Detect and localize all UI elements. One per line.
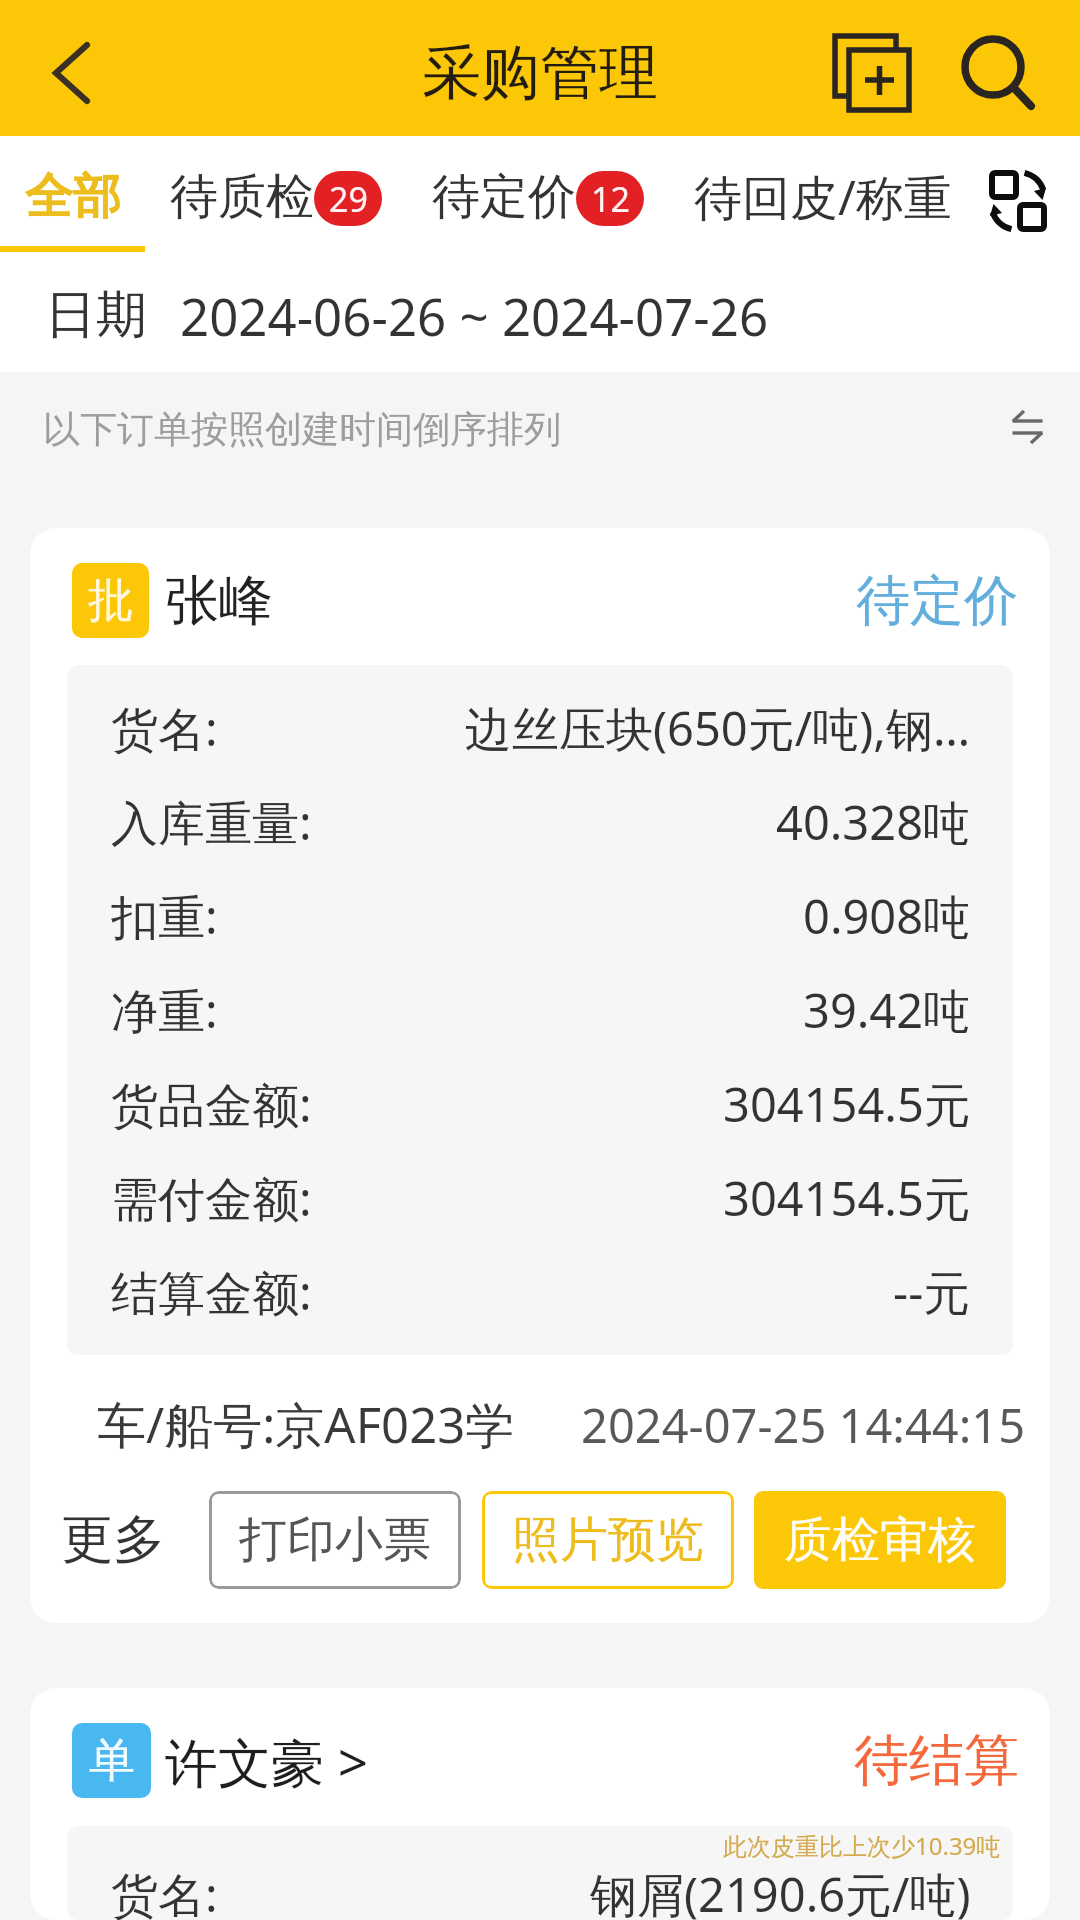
staticText: 更多	[61, 1507, 165, 1573]
staticText: 货品金额:	[111, 1072, 312, 1136]
staticText: 需付金额:	[111, 1166, 312, 1230]
button[interactable]: 照片预览	[482, 1491, 734, 1589]
button[interactable]: Sort order	[994, 393, 1060, 459]
button[interactable]: 待回皮/称重	[694, 136, 952, 258]
button[interactable]: 单	[30, 1688, 1050, 1920]
staticText: --元	[893, 1260, 971, 1324]
staticText: 待结算	[854, 1726, 1019, 1795]
staticText: 待定价	[432, 167, 576, 227]
staticText: 车/船号:京AF023学	[97, 1391, 515, 1458]
staticText: 许文豪 >	[165, 1725, 369, 1797]
staticText: 货名:	[111, 1862, 218, 1920]
staticText: 单	[89, 1732, 135, 1790]
button[interactable]: 日期	[0, 258, 1080, 372]
button[interactable]: 批	[30, 528, 1050, 1623]
staticText: 张峰	[165, 567, 273, 635]
button[interactable]: 更多	[61, 1507, 165, 1573]
button[interactable]: Back	[0, 0, 130, 136]
staticText: 待定价	[856, 567, 1018, 635]
button[interactable]: Search	[929, 5, 1069, 141]
staticText: 以下订单按照创建时间倒序排列	[43, 406, 561, 453]
staticText: 待质检	[170, 167, 314, 227]
staticText: 2024-07-25 14:44:15	[581, 1393, 1026, 1457]
staticText: 货名:	[111, 696, 218, 760]
staticText: 全部	[25, 167, 121, 227]
staticText: 扣重:	[111, 884, 218, 948]
staticText: 采购管理	[422, 36, 658, 110]
staticText: 待回皮/称重	[694, 164, 952, 230]
staticText: 批	[88, 572, 134, 630]
staticText: 钢屑(2190.6元/吨)	[590, 1862, 971, 1920]
staticText: 打印小票	[239, 1510, 431, 1570]
staticText: 0.908吨	[803, 884, 971, 948]
staticText: 29	[329, 176, 368, 222]
button[interactable]: Add order	[802, 5, 942, 141]
staticText: 304154.5元	[723, 1072, 971, 1136]
button[interactable]: 待定价	[432, 136, 644, 258]
staticText: 日期	[45, 283, 147, 347]
staticText: 39.42吨	[803, 978, 971, 1042]
staticText: 304154.5元	[723, 1166, 971, 1230]
staticText: 照片预览	[512, 1510, 704, 1570]
staticText: 12	[591, 176, 630, 222]
staticText: 此次皮重比上次少10.39吨	[723, 1829, 1001, 1862]
staticText: 40.328吨	[776, 790, 971, 854]
staticText: 结算金额:	[111, 1260, 312, 1324]
button[interactable]: 全部	[0, 136, 145, 258]
button[interactable]: 待质检	[170, 136, 382, 258]
staticText: 2024-06-26 ~ 2024-07-26	[180, 281, 769, 350]
staticText: 质检审核	[784, 1510, 976, 1570]
staticText: 边丝压块(650元/吨),钢…	[465, 696, 971, 760]
button[interactable]: 打印小票	[209, 1491, 461, 1589]
button[interactable]: 质检审核	[754, 1491, 1006, 1589]
staticText: 净重:	[111, 978, 218, 1042]
button[interactable]: Switch view	[962, 140, 1074, 262]
staticText: 入库重量:	[111, 790, 312, 854]
